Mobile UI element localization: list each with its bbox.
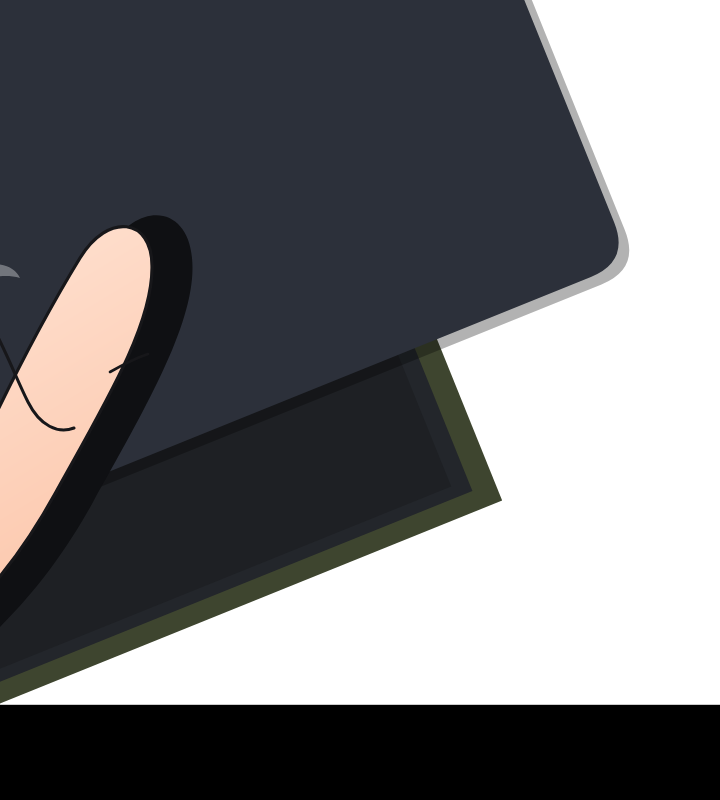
button[interactable]: Phone search suggestions illustration (0, 0, 720, 800)
